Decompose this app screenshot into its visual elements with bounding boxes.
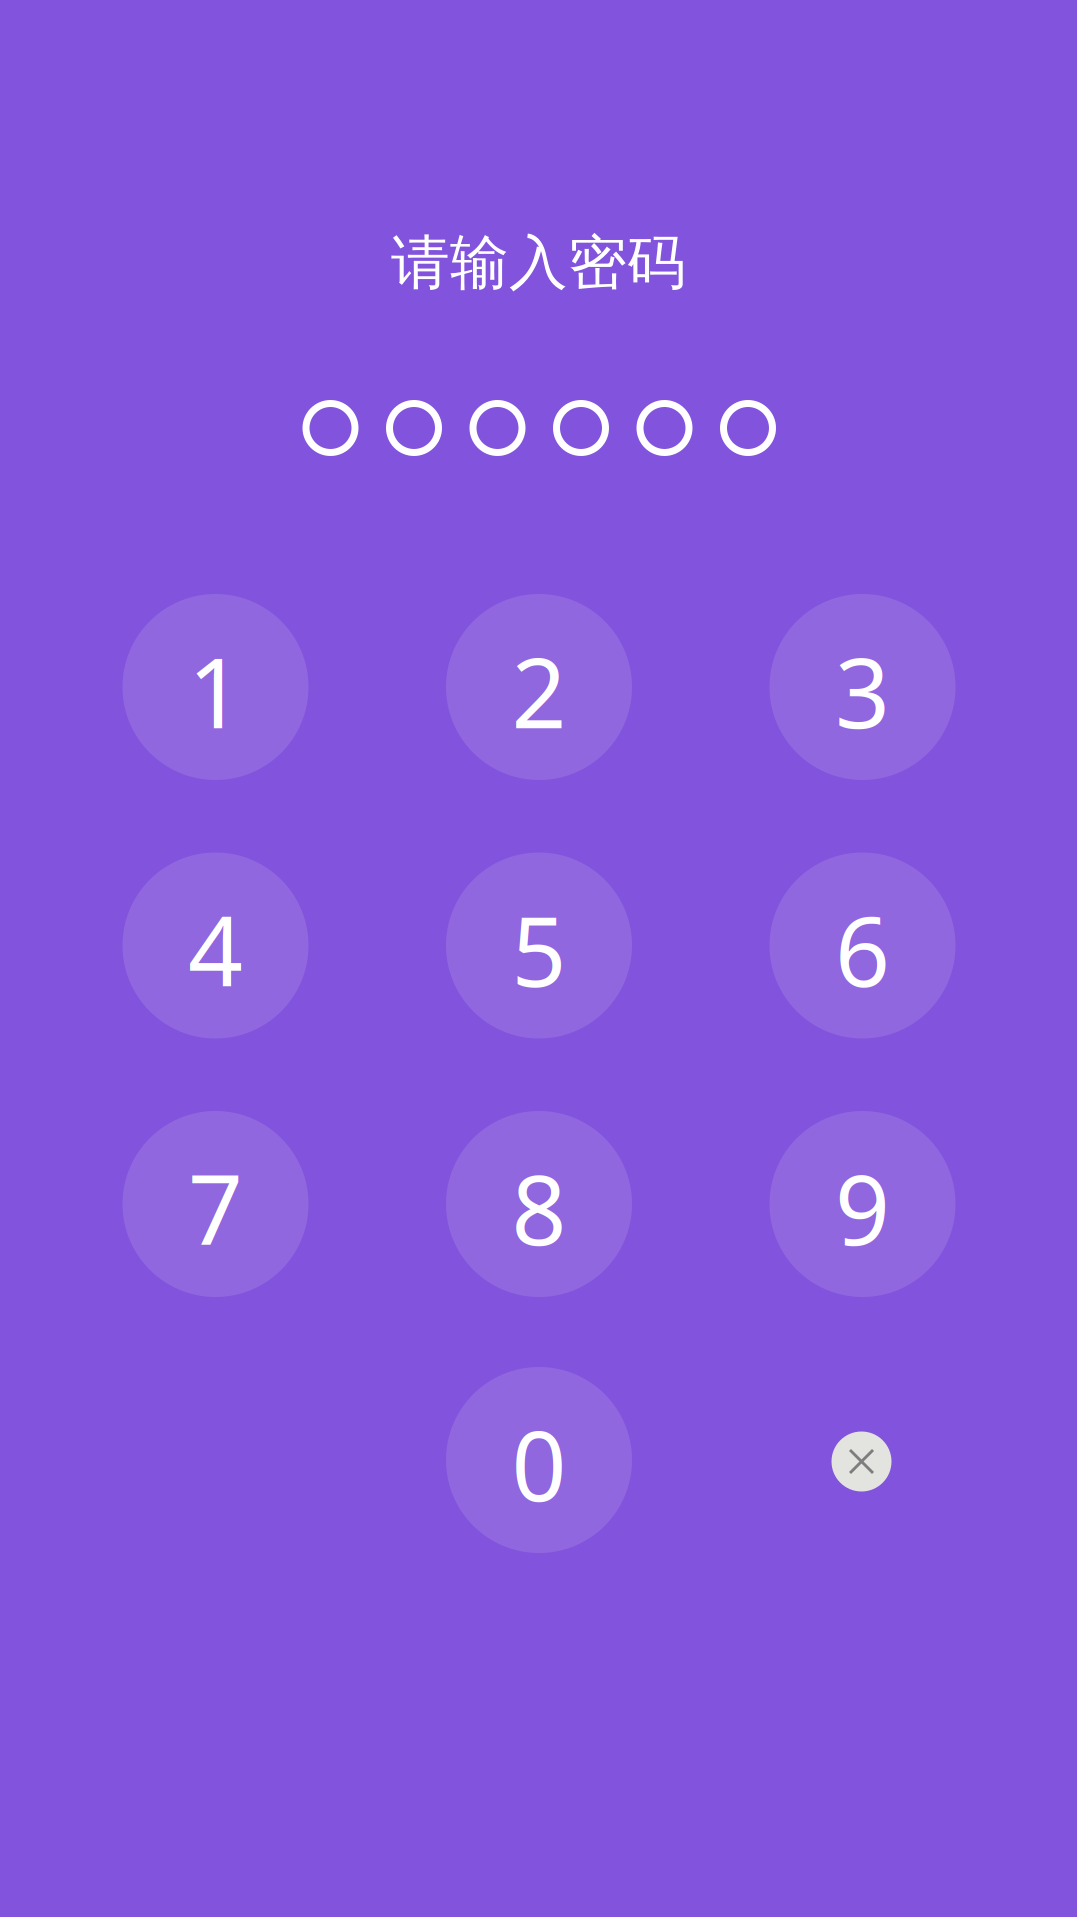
staticText: 8	[511, 1144, 566, 1272]
button[interactable]: 6	[769, 852, 955, 1038]
staticText: 4	[188, 886, 243, 1013]
staticText: 6	[835, 886, 890, 1013]
button[interactable]: 4	[122, 852, 308, 1038]
button[interactable]: Delete	[768, 1368, 954, 1554]
staticText: 2	[511, 627, 566, 755]
staticText: 0	[511, 1400, 566, 1528]
button[interactable]: 9	[769, 1111, 955, 1297]
staticText: 5	[511, 886, 566, 1013]
button[interactable]: 3	[769, 594, 955, 780]
staticText: 请输入密码	[391, 227, 686, 299]
staticText: 3	[835, 627, 890, 755]
staticText: 7	[188, 1144, 243, 1272]
staticText: 9	[835, 1144, 890, 1272]
button[interactable]: 0	[446, 1367, 632, 1553]
button[interactable]: 2	[446, 594, 632, 780]
button[interactable]: 8	[446, 1111, 632, 1297]
button[interactable]: 1	[122, 594, 308, 780]
staticText: 1	[188, 627, 243, 755]
button[interactable]: 7	[122, 1111, 308, 1297]
button[interactable]: 5	[446, 852, 632, 1038]
